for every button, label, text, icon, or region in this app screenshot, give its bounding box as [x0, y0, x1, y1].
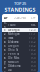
- staticText: 6: [4, 48, 6, 52]
- staticText: Alabama: [8, 40, 18, 44]
- staticText: 2: [4, 32, 6, 36]
- button[interactable]: 11: [2, 68, 38, 72]
- staticText: 11: [4, 66, 6, 72]
- staticText: TOP 25: [14, 1, 26, 6]
- staticText: 10: [4, 62, 6, 70]
- staticText: Texas: [8, 36, 13, 40]
- staticText: 11-1: [29, 32, 36, 36]
- button[interactable]: 1: [2, 28, 38, 32]
- staticText: Ohio St: [8, 48, 18, 52]
- staticText: Oklahoma: [8, 64, 20, 68]
- button[interactable]: 7: [2, 52, 38, 56]
- staticText: 4: [4, 40, 6, 44]
- staticText: 1: [4, 28, 6, 32]
- staticText: COACHES: [13, 16, 25, 20]
- staticText: 9: [4, 60, 6, 64]
- staticText: 10-2: [29, 44, 36, 48]
- staticText: 8: [4, 56, 6, 60]
- staticText: Ole Miss: [8, 56, 19, 60]
- button[interactable]: 2: [2, 32, 38, 36]
- staticText: RK: [4, 21, 7, 29]
- staticText: Missouri: [8, 60, 19, 64]
- staticText: 9-3: [31, 56, 36, 60]
- staticText: 7: [4, 52, 6, 56]
- staticText: Georgia: [8, 28, 19, 32]
- staticText: 10-2: [29, 40, 36, 44]
- button[interactable]: 9: [2, 60, 38, 64]
- staticText: REC: [31, 23, 36, 27]
- staticText: 10-2: [29, 48, 36, 52]
- staticText: 9-3: [31, 52, 36, 56]
- staticText: STANDINGS: [4, 6, 35, 13]
- staticText: 3: [4, 36, 6, 40]
- staticText: CFP: [31, 16, 36, 20]
- staticText: Penn St: [8, 52, 19, 56]
- staticText: 12-0: [29, 28, 36, 32]
- button[interactable]: 5: [2, 44, 38, 48]
- button[interactable]: 10: [2, 64, 38, 68]
- button[interactable]: 8: [2, 56, 38, 60]
- staticText: TEAM: [8, 23, 16, 27]
- button[interactable]: 6: [2, 48, 38, 52]
- button[interactable]: 4: [2, 40, 38, 44]
- staticText: LSU: [8, 68, 12, 72]
- staticText: 9-3: [31, 64, 36, 68]
- staticText: 11-1: [29, 36, 36, 40]
- staticText: Oregon: [8, 44, 19, 48]
- staticText: 9-3: [31, 60, 36, 64]
- staticText: 5: [4, 44, 6, 48]
- staticText: 9-3: [31, 68, 36, 72]
- staticText: Michigan: [8, 32, 20, 36]
- staticText: AP: [4, 16, 8, 20]
- button[interactable]: 3: [2, 36, 38, 40]
